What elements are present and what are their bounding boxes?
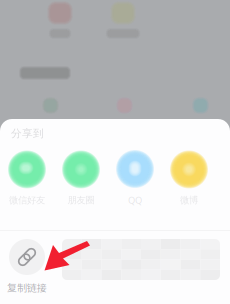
staticText: 复制链接 [7,280,47,294]
button[interactable]: 微信好友 [0,148,54,206]
staticText: 朋友圈 [67,194,94,206]
staticText: 微信好友 [9,194,45,206]
button[interactable]: QQ [108,148,162,206]
button[interactable]: 微博 [162,148,216,206]
button[interactable]: 朋友圈 [54,148,108,206]
button[interactable]: 复制链接 [0,239,54,294]
staticText: 分享到 [11,127,44,140]
staticText: QQ [128,194,142,206]
staticText: 微博 [180,194,198,206]
